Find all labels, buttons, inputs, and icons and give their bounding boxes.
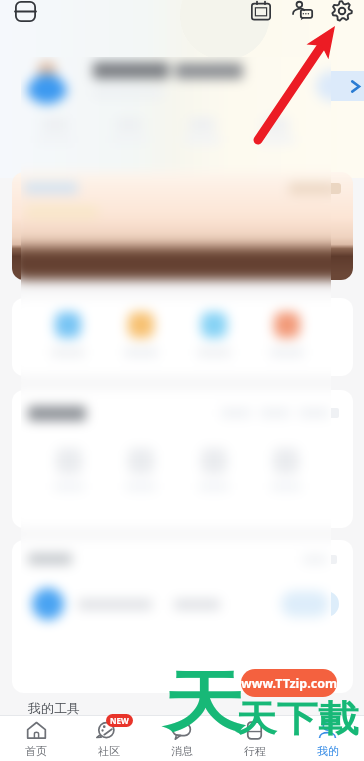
staticText: 天下載 xyxy=(236,696,359,741)
staticText: NEW xyxy=(110,715,129,726)
button[interactable]: NEW xyxy=(72,716,145,761)
button[interactable]: 消息 xyxy=(145,716,218,761)
staticText: 消息 xyxy=(171,744,193,758)
button[interactable]: Split screen xyxy=(11,0,40,22)
button[interactable]: Settings xyxy=(328,0,356,22)
button[interactable]: 首页 xyxy=(0,716,72,761)
staticText: 行程 xyxy=(244,744,266,758)
staticText: 社区 xyxy=(98,744,120,758)
staticText: 首页 xyxy=(25,744,47,758)
staticText: 天 xyxy=(163,662,244,746)
staticText: www.TTzip.com xyxy=(241,675,337,692)
staticText: 我的工具 xyxy=(28,700,80,716)
button[interactable]: 我的 xyxy=(291,716,364,761)
staticText: 我的 xyxy=(317,744,339,758)
button[interactable]: 行程 xyxy=(218,716,291,761)
button[interactable]: Customer service xyxy=(288,0,316,22)
button[interactable]: Sign in xyxy=(247,0,275,22)
